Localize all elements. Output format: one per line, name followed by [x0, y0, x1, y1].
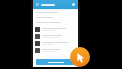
- button[interactable]: [33, 15, 78, 20]
- button[interactable]: Search: [72, 3, 75, 6]
- button[interactable]: [33, 33, 78, 40]
- button[interactable]: Tap cursor: [70, 47, 90, 67]
- button[interactable]: [33, 40, 78, 47]
- button[interactable]: [33, 10, 78, 15]
- button[interactable]: [36, 59, 75, 65]
- button[interactable]: [33, 26, 78, 33]
- button[interactable]: [33, 20, 78, 25]
- button[interactable]: Menu: [33, 0, 78, 9]
- button[interactable]: [33, 47, 78, 54]
